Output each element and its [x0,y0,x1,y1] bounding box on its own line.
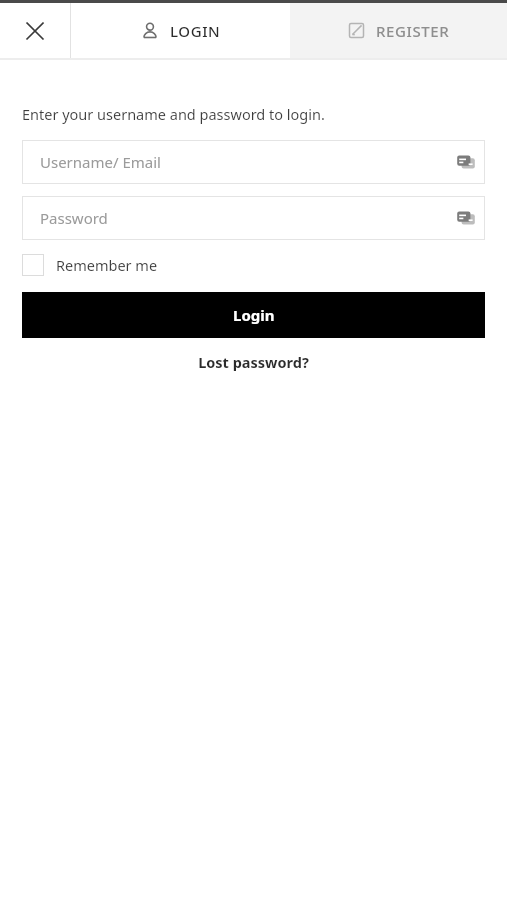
button[interactable]: REGISTER [290,3,507,58]
staticText: Lost password? [198,352,309,372]
button[interactable]: Remember me [22,254,158,276]
staticText: Password [40,208,108,228]
staticText: Enter your username and password to logi… [22,104,325,124]
button[interactable]: Password [22,196,485,240]
button[interactable]: Close [0,3,70,58]
staticText: Remember me [56,255,158,275]
button[interactable]: LOGIN [71,3,290,58]
button[interactable]: Lost password? [198,352,309,372]
staticText: REGISTER [376,21,450,41]
button[interactable]: Login [22,292,485,338]
staticText: LOGIN [170,21,221,41]
button[interactable]: Username/ Email [22,140,485,184]
staticText: Username/ Email [40,152,161,172]
staticText: Login [233,305,275,325]
